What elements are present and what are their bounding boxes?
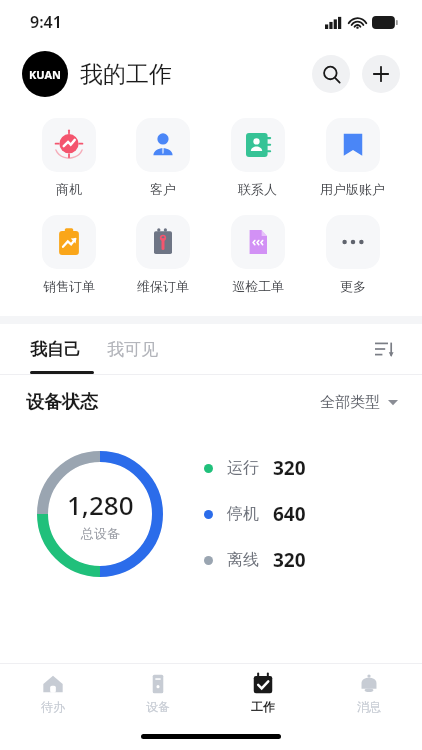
button[interactable]: 设备 [105, 664, 210, 722]
button[interactable]: 待办 [0, 664, 105, 722]
button[interactable]: 我可见 [107, 339, 158, 360]
staticText: 用户版账户 [320, 181, 385, 197]
button[interactable]: 巡检工单 [210, 213, 305, 296]
staticText: 设备状态 [26, 391, 98, 414]
staticText: 销售订单 [43, 278, 95, 294]
staticText: 待办 [41, 699, 65, 714]
staticText: 工作 [251, 699, 275, 714]
staticText: 维保订单 [137, 278, 189, 294]
staticText: 640 [273, 501, 306, 527]
button[interactable]: 工作 [210, 664, 316, 722]
staticText: 9:41 [30, 11, 62, 33]
staticText: 巡检工单 [232, 278, 284, 294]
staticText: 我自己 [30, 339, 81, 360]
button[interactable]: 客户 [116, 116, 210, 199]
staticText: 320 [273, 547, 306, 573]
staticText: 1,280 [67, 487, 134, 522]
staticText: 消息 [357, 699, 381, 714]
button[interactable]: 消息 [316, 664, 422, 722]
button[interactable]: 销售订单 [22, 213, 116, 296]
staticText: 商机 [56, 181, 82, 197]
button[interactable]: 更多 [305, 213, 400, 296]
staticText: 总设备 [81, 525, 120, 541]
staticText: 我可见 [107, 339, 158, 360]
staticText: 停机 [227, 504, 259, 524]
staticText: 全部类型 [320, 393, 380, 412]
staticText: 320 [273, 455, 306, 481]
button[interactable]: Sort [370, 335, 398, 363]
button[interactable]: 联系人 [210, 116, 305, 199]
button[interactable]: 全部类型 [320, 393, 398, 412]
staticText: 我的工作 [80, 60, 172, 89]
staticText: 更多 [340, 278, 366, 294]
button[interactable]: Search [312, 55, 350, 93]
button[interactable]: 维保订单 [116, 213, 210, 296]
staticText: KUAN [29, 67, 62, 82]
staticText: 客户 [150, 181, 176, 197]
staticText: 离线 [227, 550, 259, 570]
button[interactable]: 用户版账户 [305, 116, 400, 199]
staticText: 运行 [227, 458, 259, 478]
button[interactable]: 商机 [22, 116, 116, 199]
staticText: 设备 [146, 699, 170, 714]
button[interactable]: 我自己 [30, 339, 81, 360]
button[interactable]: Add [362, 55, 400, 93]
staticText: 联系人 [238, 181, 277, 197]
